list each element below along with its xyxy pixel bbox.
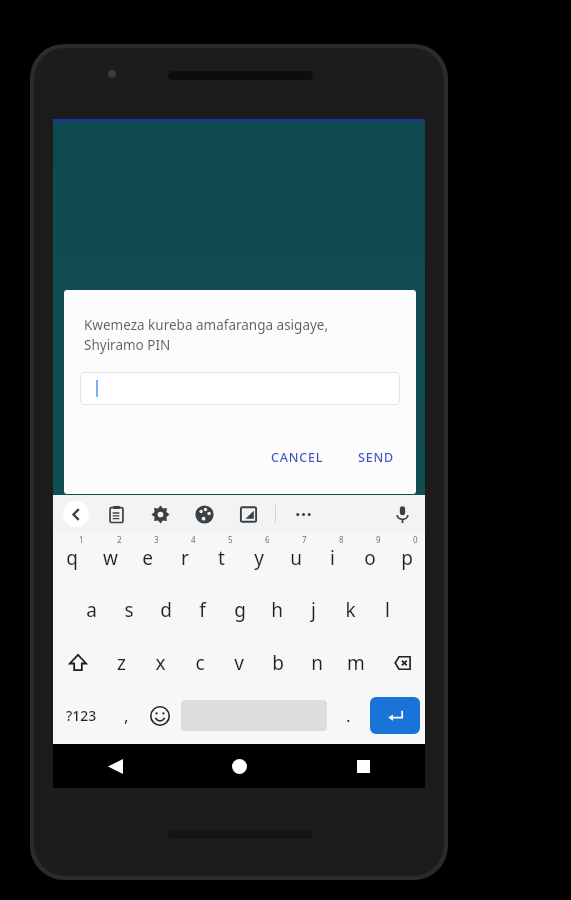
staticText: c bbox=[195, 650, 205, 676]
button[interactable]: r bbox=[166, 532, 203, 584]
staticText: x bbox=[155, 650, 166, 676]
staticText: b bbox=[272, 650, 284, 676]
staticText: g bbox=[234, 597, 246, 623]
staticText: , bbox=[124, 704, 129, 727]
button[interactable]: u bbox=[277, 532, 314, 584]
button[interactable]: i bbox=[314, 532, 351, 584]
button[interactable]: Shift bbox=[53, 636, 102, 689]
button[interactable]: f bbox=[184, 584, 221, 636]
staticText: f bbox=[199, 597, 206, 623]
staticText: a bbox=[86, 597, 97, 623]
button[interactable]: , bbox=[109, 689, 143, 742]
button[interactable]: d bbox=[147, 584, 184, 636]
staticText: 1 bbox=[79, 534, 84, 545]
button[interactable]: y bbox=[240, 532, 277, 584]
staticText: . bbox=[346, 704, 351, 727]
staticText: 9 bbox=[376, 534, 381, 545]
button[interactable]: k bbox=[332, 584, 369, 636]
staticText: s bbox=[124, 597, 134, 623]
staticText: Kwemeza kureba amafaranga asigaye, Shyir… bbox=[84, 316, 329, 354]
staticText: e bbox=[142, 545, 153, 571]
button[interactable]: e bbox=[129, 532, 166, 584]
button[interactable]: Voice input bbox=[389, 501, 415, 527]
button[interactable]: t bbox=[203, 532, 240, 584]
staticText: 2 bbox=[117, 534, 122, 545]
button[interactable]: v bbox=[219, 636, 258, 689]
button[interactable]: c bbox=[180, 636, 219, 689]
button[interactable]: Back bbox=[63, 501, 89, 527]
staticText: w bbox=[103, 545, 118, 571]
button[interactable]: More options bbox=[290, 501, 316, 527]
button[interactable]: p bbox=[388, 532, 425, 584]
staticText: 5 bbox=[228, 534, 233, 545]
staticText: CANCEL bbox=[271, 449, 324, 466]
button[interactable]: Home bbox=[177, 744, 301, 788]
button[interactable]: s bbox=[110, 584, 147, 636]
staticText: i bbox=[330, 545, 335, 571]
staticText: j bbox=[311, 597, 316, 623]
button[interactable]: q bbox=[53, 532, 91, 584]
staticText: y bbox=[254, 545, 264, 571]
button[interactable]: . bbox=[331, 689, 365, 742]
staticText: 8 bbox=[339, 534, 344, 545]
staticText: h bbox=[271, 597, 283, 623]
staticText: u bbox=[290, 545, 302, 571]
staticText: k bbox=[345, 597, 356, 623]
staticText: 7 bbox=[302, 534, 307, 545]
staticText: l bbox=[385, 597, 390, 623]
button[interactable]: j bbox=[295, 584, 332, 636]
button[interactable]: Themes bbox=[191, 501, 217, 527]
staticText: v bbox=[234, 650, 244, 676]
staticText: 0 bbox=[413, 534, 418, 545]
button[interactable]: Back bbox=[53, 744, 177, 788]
button[interactable]: Recents bbox=[301, 744, 425, 788]
button[interactable]: w bbox=[91, 532, 129, 584]
staticText: t bbox=[218, 545, 225, 571]
staticText: m bbox=[347, 650, 365, 676]
button[interactable] bbox=[80, 372, 400, 405]
button[interactable]: CANCEL bbox=[263, 443, 332, 472]
staticText: n bbox=[311, 650, 323, 676]
button[interactable]: m bbox=[336, 636, 375, 689]
button[interactable]: h bbox=[258, 584, 295, 636]
button[interactable]: g bbox=[221, 584, 258, 636]
button[interactable]: z bbox=[102, 636, 141, 689]
button[interactable]: Emoji bbox=[143, 689, 177, 742]
button[interactable]: Clipboard bbox=[103, 501, 129, 527]
button[interactable]: Resize keyboard bbox=[235, 501, 261, 527]
staticText: o bbox=[364, 545, 376, 571]
button[interactable]: Enter bbox=[370, 697, 420, 734]
staticText: 4 bbox=[191, 534, 196, 545]
staticText: ?123 bbox=[66, 706, 97, 725]
button[interactable]: a bbox=[73, 584, 110, 636]
staticText: r bbox=[181, 545, 189, 571]
button[interactable]: SEND bbox=[350, 443, 402, 472]
staticText: 6 bbox=[265, 534, 270, 545]
staticText: p bbox=[401, 545, 413, 571]
staticText: d bbox=[160, 597, 172, 623]
button[interactable]: l bbox=[369, 584, 406, 636]
button[interactable]: o bbox=[351, 532, 388, 584]
staticText: 3 bbox=[154, 534, 159, 545]
button[interactable]: x bbox=[141, 636, 180, 689]
button[interactable]: b bbox=[258, 636, 297, 689]
staticText: z bbox=[117, 650, 126, 676]
button[interactable]: Backspace bbox=[375, 636, 425, 689]
staticText: q bbox=[66, 545, 78, 571]
button[interactable]: Settings bbox=[147, 501, 173, 527]
button[interactable]: ?123 bbox=[53, 689, 109, 742]
staticText: SEND bbox=[358, 449, 394, 466]
button[interactable]: n bbox=[297, 636, 336, 689]
